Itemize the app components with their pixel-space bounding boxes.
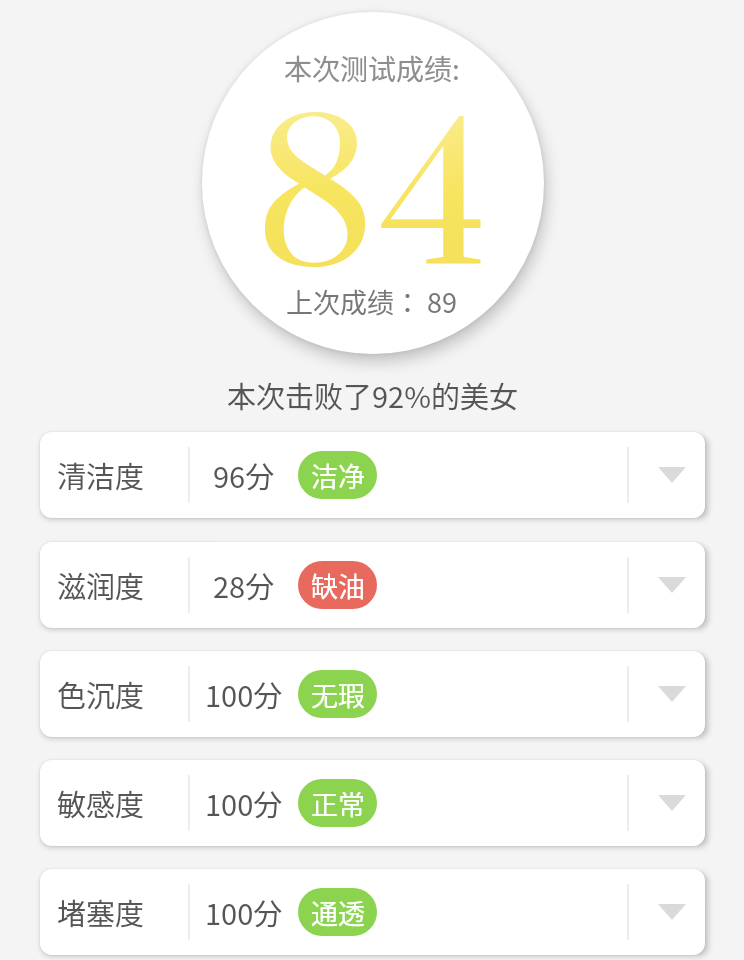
staticText: 84: [255, 80, 496, 329]
staticText: 本次击败了92%的美女: [227, 374, 518, 416]
staticText: 100分: [205, 891, 283, 933]
staticText: 通透: [311, 893, 365, 932]
staticText: 堵塞度: [57, 891, 145, 933]
button[interactable]: 敏感度: [40, 760, 705, 846]
button[interactable]: 清洁度: [40, 432, 705, 518]
staticText: 28分: [213, 564, 275, 606]
staticText: 缺油: [311, 566, 365, 605]
staticText: 敏感度: [57, 782, 145, 824]
staticText: 正常: [311, 784, 365, 823]
button[interactable]: 堵塞度: [40, 869, 705, 955]
staticText: 洁净: [311, 456, 365, 495]
staticText: 100分: [205, 673, 283, 715]
staticText: 清洁度: [57, 454, 145, 496]
button[interactable]: 色沉度: [40, 651, 705, 737]
button[interactable]: 滋润度: [40, 542, 705, 628]
staticText: 色沉度: [57, 673, 145, 715]
staticText: 无瑕: [311, 675, 365, 714]
staticText: 本次测试成绩:: [284, 48, 460, 89]
staticText: 96分: [213, 454, 275, 496]
staticText: 滋润度: [57, 564, 145, 606]
staticText: 100分: [205, 782, 283, 824]
staticText: 上次成绩： 89: [286, 282, 458, 321]
